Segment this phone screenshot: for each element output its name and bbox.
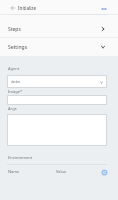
staticText: Settings	[8, 44, 28, 51]
staticText: Environment	[8, 155, 33, 160]
staticText: Args	[8, 106, 17, 111]
button[interactable]: Add environment variable	[99, 167, 109, 177]
staticText: Image*	[8, 89, 23, 94]
button[interactable]: More options	[97, 0, 118, 14]
staticText: Name	[8, 169, 20, 174]
button[interactable]: Steps	[0, 15, 118, 37]
staticText: Initialize	[18, 5, 37, 11]
button[interactable]	[7, 95, 107, 105]
button[interactable]: docker	[7, 75, 107, 88]
staticText: Steps	[8, 26, 21, 33]
staticText: Agent	[8, 66, 20, 71]
button[interactable]: Settings	[0, 38, 118, 56]
staticText: docker	[11, 80, 21, 84]
button[interactable]	[7, 114, 107, 146]
staticText: Value	[56, 169, 67, 174]
button[interactable]: Back	[0, 0, 18, 14]
